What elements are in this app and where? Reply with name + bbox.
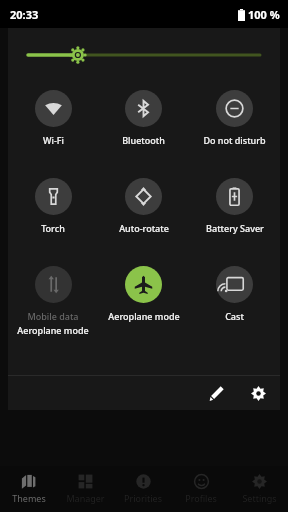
staticText: Settings <box>242 492 277 504</box>
button[interactable]: Settings <box>242 377 274 409</box>
button[interactable]: Profiles <box>172 466 230 512</box>
staticText: Priorities <box>124 492 162 504</box>
staticText: Cast <box>225 310 244 322</box>
staticText: DarkCroc <box>211 90 271 108</box>
button[interactable]: Wi-Fi <box>8 82 98 170</box>
button[interactable]: Brightness <box>8 28 280 82</box>
staticText: Manager <box>66 492 105 504</box>
button[interactable]: Mobile data <box>8 258 98 346</box>
button[interactable]: Priorities <box>114 466 172 512</box>
button[interactable]: Cast <box>189 258 280 346</box>
button[interactable]: Bluetooth <box>98 82 189 170</box>
staticText: Mobile data <box>27 310 79 322</box>
button[interactable]: Battery Saver <box>189 170 280 258</box>
button[interactable]: Aeroplane mode <box>98 258 189 346</box>
staticText: SpiritCroc <box>228 180 270 192</box>
staticText: Wi-Fi <box>43 134 64 146</box>
staticText: 100 % <box>248 7 280 22</box>
staticText: Profiles <box>185 492 217 504</box>
button[interactable]: Do not disturb <box>189 82 280 170</box>
staticText: Bluetooth <box>122 134 165 146</box>
button[interactable]: Manager <box>57 466 114 512</box>
button[interactable]: Auto-rotate <box>98 170 189 258</box>
staticText: Themes <box>12 492 46 504</box>
button[interactable]: Torch <box>8 170 98 258</box>
staticText: SpiritCroc <box>228 104 270 116</box>
button[interactable]: Edit <box>200 377 232 409</box>
button[interactable]: Themes <box>0 466 57 512</box>
staticText: Torch <box>41 222 65 234</box>
staticText: 20:33 <box>10 7 39 22</box>
staticText: Auto-rotate <box>119 222 169 234</box>
staticText: Do not disturb <box>203 134 266 146</box>
staticText: Battery Saver <box>206 222 264 234</box>
staticText: Default Dark <box>195 165 278 183</box>
staticText: Aeroplane mode <box>17 324 89 336</box>
button[interactable]: Settings <box>230 466 288 512</box>
staticText: Aeroplane mode <box>108 310 180 322</box>
